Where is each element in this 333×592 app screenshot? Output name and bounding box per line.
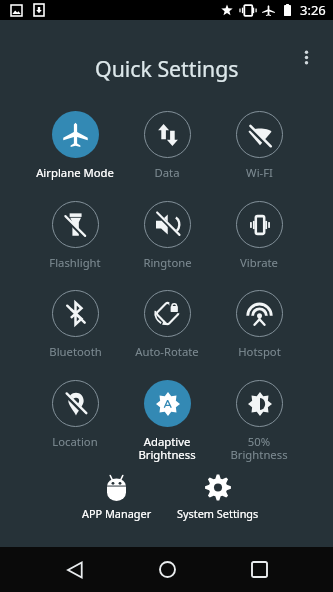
button[interactable]: Flashlight (29, 201, 121, 270)
staticText: Hotspot (238, 344, 281, 359)
staticText: Ringtone (143, 255, 192, 270)
button[interactable]: Ringtone (121, 201, 213, 270)
button[interactable]: Wi-FI (213, 111, 305, 180)
button[interactable]: Auto-Rotate (121, 290, 213, 359)
staticText: Bluetooth (49, 344, 102, 359)
staticText: Adaptive Brightness (138, 434, 196, 462)
staticText: Flashlight (49, 255, 101, 270)
button[interactable]: Home (121, 547, 213, 592)
staticText: Quick Settings (95, 54, 239, 83)
staticText: Data (154, 165, 180, 180)
button[interactable]: Location (29, 380, 121, 449)
button[interactable]: System Settings (167, 474, 268, 521)
button[interactable]: Adaptive Brightness (121, 380, 213, 462)
staticText: Wi-FI (246, 165, 273, 180)
button[interactable]: 50% Brightness (213, 380, 305, 462)
button[interactable]: Recents (213, 547, 305, 592)
staticText: System Settings (177, 506, 259, 521)
staticText: 50% Brightness (230, 434, 288, 462)
button[interactable]: Airplane Mode (29, 111, 121, 180)
button[interactable]: More options (291, 42, 321, 72)
staticText: Vibrate (240, 255, 278, 270)
button[interactable]: Bluetooth (29, 290, 121, 359)
button[interactable]: Hotspot (213, 290, 305, 359)
button[interactable]: Back (29, 547, 121, 592)
staticText: Auto-Rotate (135, 344, 199, 359)
staticText: APP Manager (82, 506, 152, 521)
button[interactable]: Vibrate (213, 201, 305, 270)
staticText: Location (52, 434, 98, 449)
button[interactable]: Data (121, 111, 213, 180)
staticText: Airplane Mode (36, 165, 114, 180)
staticText: 3:26 (300, 1, 326, 19)
button[interactable]: APP Manager (66, 474, 167, 521)
